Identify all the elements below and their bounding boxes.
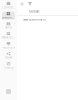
staticText: Flows [5, 56, 12, 59]
button[interactable]: Flows [2, 51, 15, 59]
button[interactable]: Environments [2, 11, 15, 19]
staticText: History [4, 66, 13, 69]
staticText: Collections [2, 6, 15, 9]
staticText: New Environment [23, 18, 46, 21]
button[interactable]: New Environment [17, 16, 78, 23]
staticText: Globals [29, 10, 39, 13]
button[interactable]: APIs [2, 21, 15, 29]
button[interactable]: Profile [6, 89, 11, 94]
staticText: APIs [5, 26, 11, 29]
staticText: Environments [2, 16, 15, 19]
button[interactable]: Filter [26, 0, 34, 8]
button[interactable]: Globals [17, 8, 78, 15]
button[interactable]: Collections [2, 1, 15, 9]
button[interactable]: Create new [18, 0, 26, 8]
button[interactable]: Mock servers [2, 31, 15, 39]
staticText: Monitors [2, 46, 14, 49]
staticText: Mock servers [2, 36, 15, 39]
button[interactable]: History [2, 61, 15, 69]
button[interactable]: Monitors [2, 41, 15, 49]
